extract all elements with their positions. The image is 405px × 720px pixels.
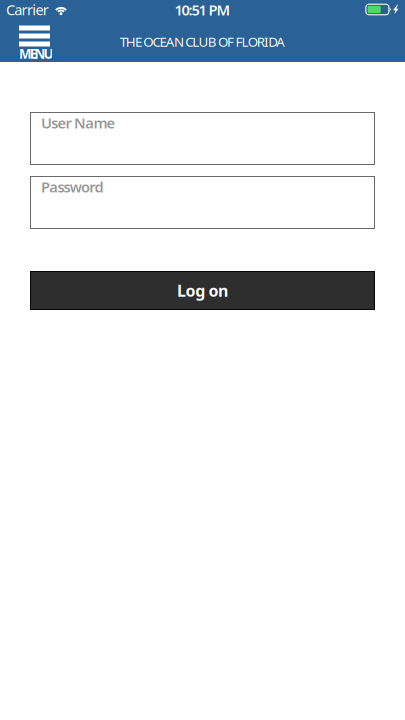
staticText: THE OCEAN CLUB OF FLORIDA bbox=[120, 33, 285, 50]
button[interactable]: Log on bbox=[30, 271, 375, 310]
staticText: 10:51 PM bbox=[174, 0, 230, 19]
staticText: Password bbox=[41, 177, 103, 196]
staticText: Log on bbox=[177, 280, 228, 301]
button[interactable]: Menu bbox=[0, 18, 61, 62]
staticText: MENU bbox=[19, 45, 53, 62]
staticText: Carrier bbox=[6, 0, 49, 19]
staticText: User Name bbox=[41, 113, 116, 132]
